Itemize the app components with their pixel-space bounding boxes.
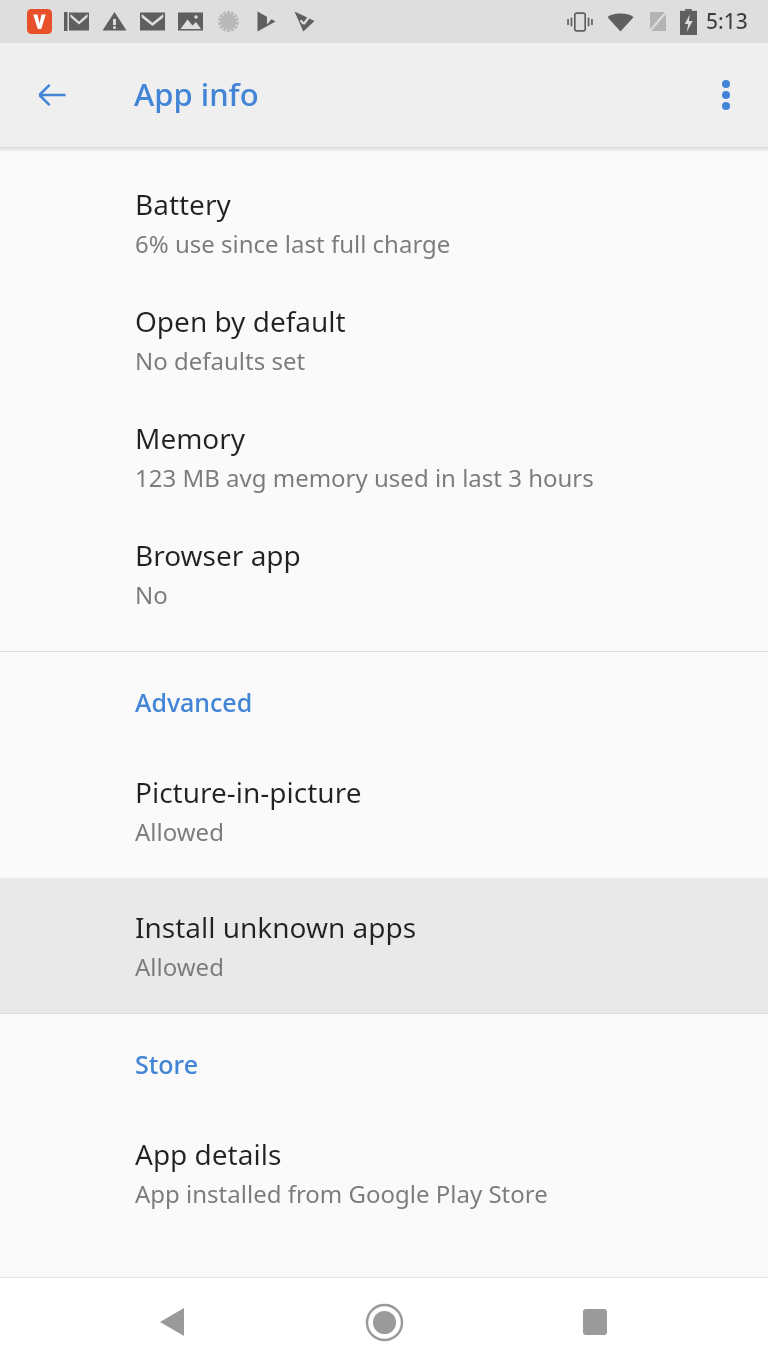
staticText: Battery [135,185,231,223]
button[interactable]: More options [696,65,756,125]
button[interactable]: Browser app [0,515,768,632]
staticText: No defaults set [135,344,306,377]
staticText: 6% use since last full charge [135,227,451,260]
staticText: Advanced [135,685,253,719]
staticText: Install unknown apps [135,908,417,946]
staticText: Browser app [135,536,301,574]
button[interactable]: Open by default [0,281,768,398]
staticText: Allowed [135,815,224,848]
button[interactable]: Picture-in-picture [0,752,768,869]
staticText: 5:13 [706,7,748,36]
staticText: Allowed [135,950,224,983]
button[interactable]: Home [344,1282,424,1362]
staticText: No [135,578,168,611]
button[interactable]: Back [22,65,82,125]
button[interactable]: Memory [0,398,768,515]
button[interactable]: Back [132,1282,212,1362]
staticText: Memory [135,419,246,457]
button[interactable]: Battery [0,164,768,281]
staticText: 123 MB avg memory used in last 3 hours [135,461,594,494]
staticText: Store [135,1047,199,1081]
button[interactable]: Recent apps [555,1282,635,1362]
staticText: App installed from Google Play Store [135,1177,548,1210]
staticText: Open by default [135,302,346,340]
staticText: App details [135,1135,282,1173]
staticText: Picture-in-picture [135,773,362,811]
button[interactable]: Install unknown apps [0,887,768,1004]
button[interactable]: App details [0,1114,768,1231]
staticText: App info [134,73,259,115]
